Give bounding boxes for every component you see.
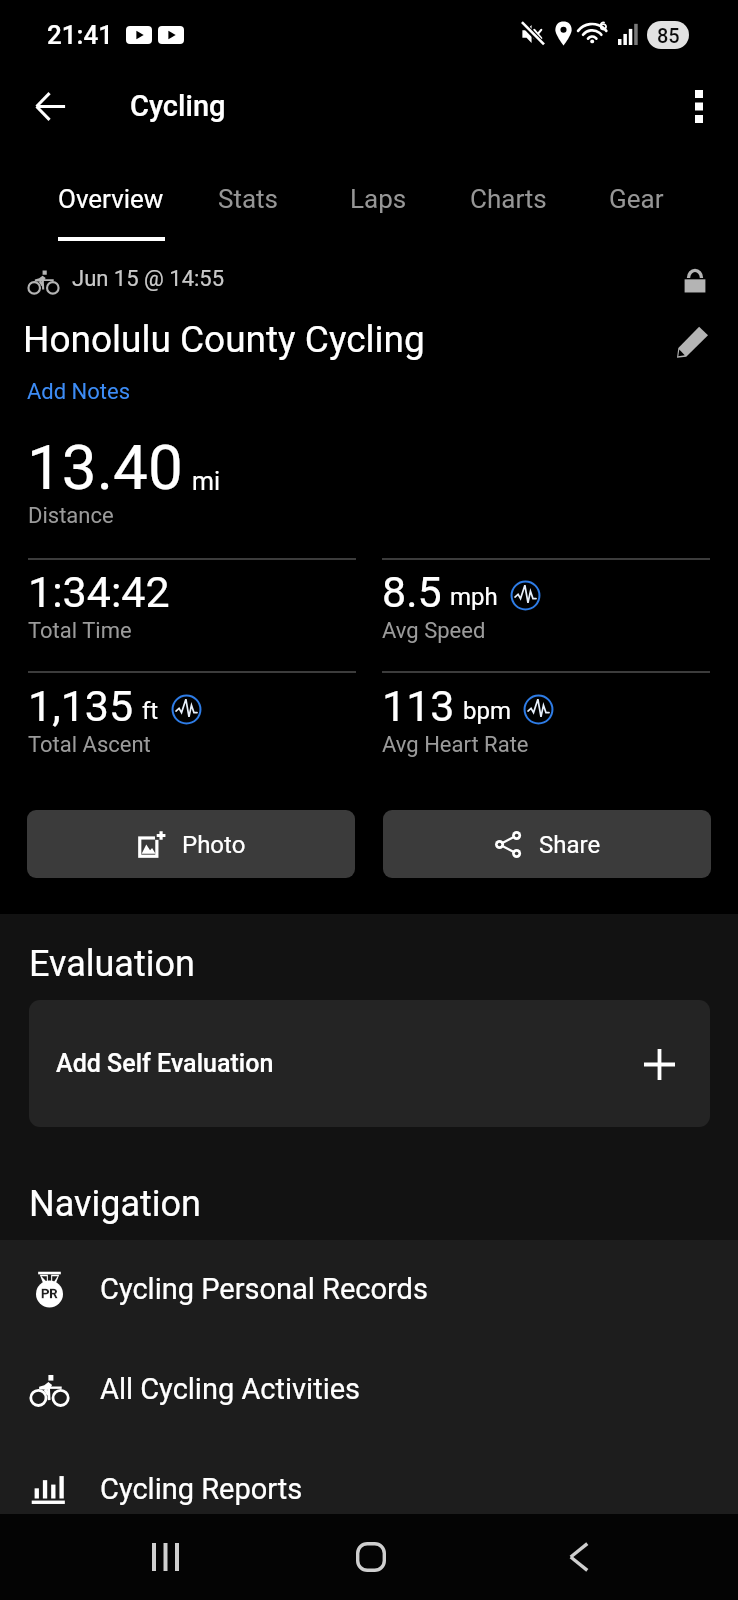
staticText: Laps	[350, 184, 407, 214]
button[interactable]: More options	[667, 74, 731, 138]
button[interactable]: Add Notes	[27, 379, 131, 405]
button[interactable]: Overview	[43, 148, 179, 248]
button[interactable]: Add self evaluation	[636, 1041, 682, 1087]
button[interactable]: Stats	[180, 148, 316, 248]
staticText: Honolulu County Cycling	[23, 318, 425, 361]
staticText: 85	[657, 24, 680, 47]
button[interactable]: Laps	[310, 148, 446, 248]
staticText: Navigation	[29, 1183, 201, 1225]
staticText: Evaluation	[29, 943, 195, 985]
staticText: Stats	[218, 184, 279, 214]
button[interactable]: Home	[335, 1521, 407, 1593]
staticText: mph	[450, 583, 498, 611]
staticText: Total Ascent	[28, 732, 151, 758]
staticText: Photo	[182, 831, 246, 859]
staticText: Total Time	[28, 618, 132, 644]
button[interactable]: Cycling Reports	[0, 1439, 738, 1539]
button[interactable]: Charts	[440, 148, 576, 248]
staticText: Gear	[609, 184, 664, 214]
button[interactable]: PR	[0, 1239, 738, 1339]
staticText: Jun 15 @ 14:55	[72, 266, 225, 292]
button[interactable]: Recents	[129, 1521, 201, 1593]
button[interactable]: All Cycling Activities	[0, 1339, 738, 1439]
button[interactable]: Back	[543, 1521, 615, 1593]
staticText: 1,135	[28, 681, 134, 731]
button[interactable]: Gear	[568, 148, 704, 248]
staticText: Avg Heart Rate	[382, 732, 529, 758]
button[interactable]: Back	[18, 74, 82, 138]
staticText: mi	[192, 467, 221, 496]
staticText: Distance	[28, 503, 114, 529]
staticText: Cycling Reports	[100, 1472, 303, 1506]
staticText: 1:34:42	[28, 567, 170, 617]
staticText: Cycling	[130, 89, 226, 123]
staticText: PR	[41, 1286, 58, 1301]
staticText: Cycling Personal Records	[100, 1272, 428, 1306]
button[interactable]: Add Self Evaluation	[29, 1000, 710, 1127]
staticText: Overview	[58, 184, 164, 214]
staticText: 113	[382, 681, 455, 731]
staticText: Avg Speed	[382, 618, 486, 644]
staticText: Share	[539, 831, 601, 859]
staticText: bpm	[463, 697, 511, 725]
staticText: 21:41	[47, 20, 114, 50]
button[interactable]: Private activity	[672, 264, 718, 298]
staticText: Charts	[470, 184, 547, 214]
staticText: ft	[142, 697, 159, 725]
staticText: All Cycling Activities	[100, 1372, 361, 1406]
button[interactable]: Edit name	[669, 318, 715, 364]
staticText: Add Self Evaluation	[56, 1049, 274, 1078]
button[interactable]: Share	[383, 810, 711, 878]
button[interactable]: Photo	[27, 810, 355, 878]
staticText: 8.5	[382, 567, 442, 617]
staticText: 13.40	[27, 431, 183, 504]
